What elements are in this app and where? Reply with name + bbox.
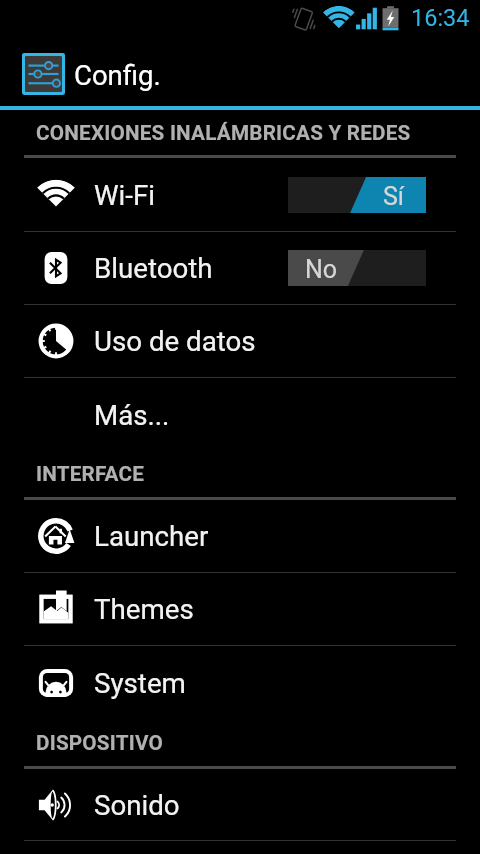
staticText: No	[305, 255, 338, 284]
button[interactable]: Uso de datos	[0, 305, 480, 377]
button[interactable]: Más...	[0, 378, 480, 451]
button[interactable]: Wi-Fi	[0, 158, 480, 231]
staticText: CONEXIONES INALÁMBRICAS Y REDES	[36, 121, 411, 145]
staticText: Uso de datos	[94, 325, 256, 357]
staticText: Wi-Fi	[94, 179, 155, 211]
button[interactable]: Launcher	[0, 500, 480, 572]
staticText: DISPOSITIVO	[36, 731, 164, 755]
staticText: Más...	[94, 399, 170, 431]
staticText: Themes	[94, 593, 194, 625]
staticText: Sonido	[94, 789, 180, 821]
button[interactable]: System	[0, 646, 480, 719]
staticText: Launcher	[94, 520, 209, 552]
staticText: Config.	[74, 59, 161, 91]
staticText: INTERFACE	[36, 462, 145, 486]
staticText: 16:34	[411, 4, 470, 32]
button[interactable]: Sí	[288, 177, 426, 213]
button[interactable]: Sonido	[0, 769, 480, 840]
staticText: Bluetooth	[94, 252, 213, 284]
staticText: Sí	[383, 182, 405, 211]
button[interactable]: Bluetooth	[0, 232, 480, 304]
button[interactable]: Themes	[0, 573, 480, 645]
button[interactable]: No	[288, 250, 426, 286]
staticText: System	[94, 667, 186, 699]
